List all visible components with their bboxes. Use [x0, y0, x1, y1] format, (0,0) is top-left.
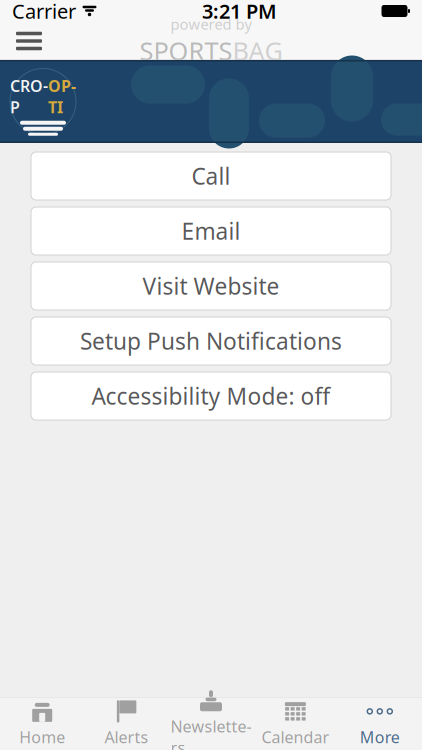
button[interactable]: Newsletters: [169, 697, 253, 750]
staticText: OPTI: [48, 75, 76, 118]
staticText: Calendar: [261, 726, 329, 748]
staticText: SPORTS: [139, 34, 232, 67]
staticText: Newsletters: [170, 716, 251, 750]
staticText: 3:21 PM: [202, 0, 277, 24]
staticText: Home: [19, 726, 65, 748]
staticText: Visit Website: [142, 271, 279, 301]
button[interactable]: Accessibility Mode: off: [31, 372, 391, 420]
staticText: More: [360, 726, 400, 748]
button[interactable]: Setup Push Notifications: [31, 317, 391, 365]
button[interactable]: Home: [0, 697, 84, 750]
staticText: BAG: [232, 34, 282, 67]
button[interactable]: More: [338, 697, 422, 750]
button[interactable]: Alerts: [84, 697, 169, 750]
staticText: powered by: [170, 14, 251, 34]
staticText: Email: [181, 216, 240, 246]
staticText: Alerts: [105, 726, 149, 748]
staticText: CROP: [10, 75, 48, 118]
button[interactable]: Call: [31, 152, 391, 200]
button[interactable]: Email: [31, 207, 391, 255]
button[interactable]: Calendar: [253, 697, 338, 750]
staticText: Setup Push Notifications: [80, 326, 342, 356]
staticText: Call: [191, 161, 230, 191]
button[interactable]: Menu: [6, 22, 52, 60]
staticText: Accessibility Mode: off: [91, 381, 330, 411]
staticText: Carrier: [12, 0, 76, 24]
button[interactable]: Visit Website: [31, 262, 391, 310]
